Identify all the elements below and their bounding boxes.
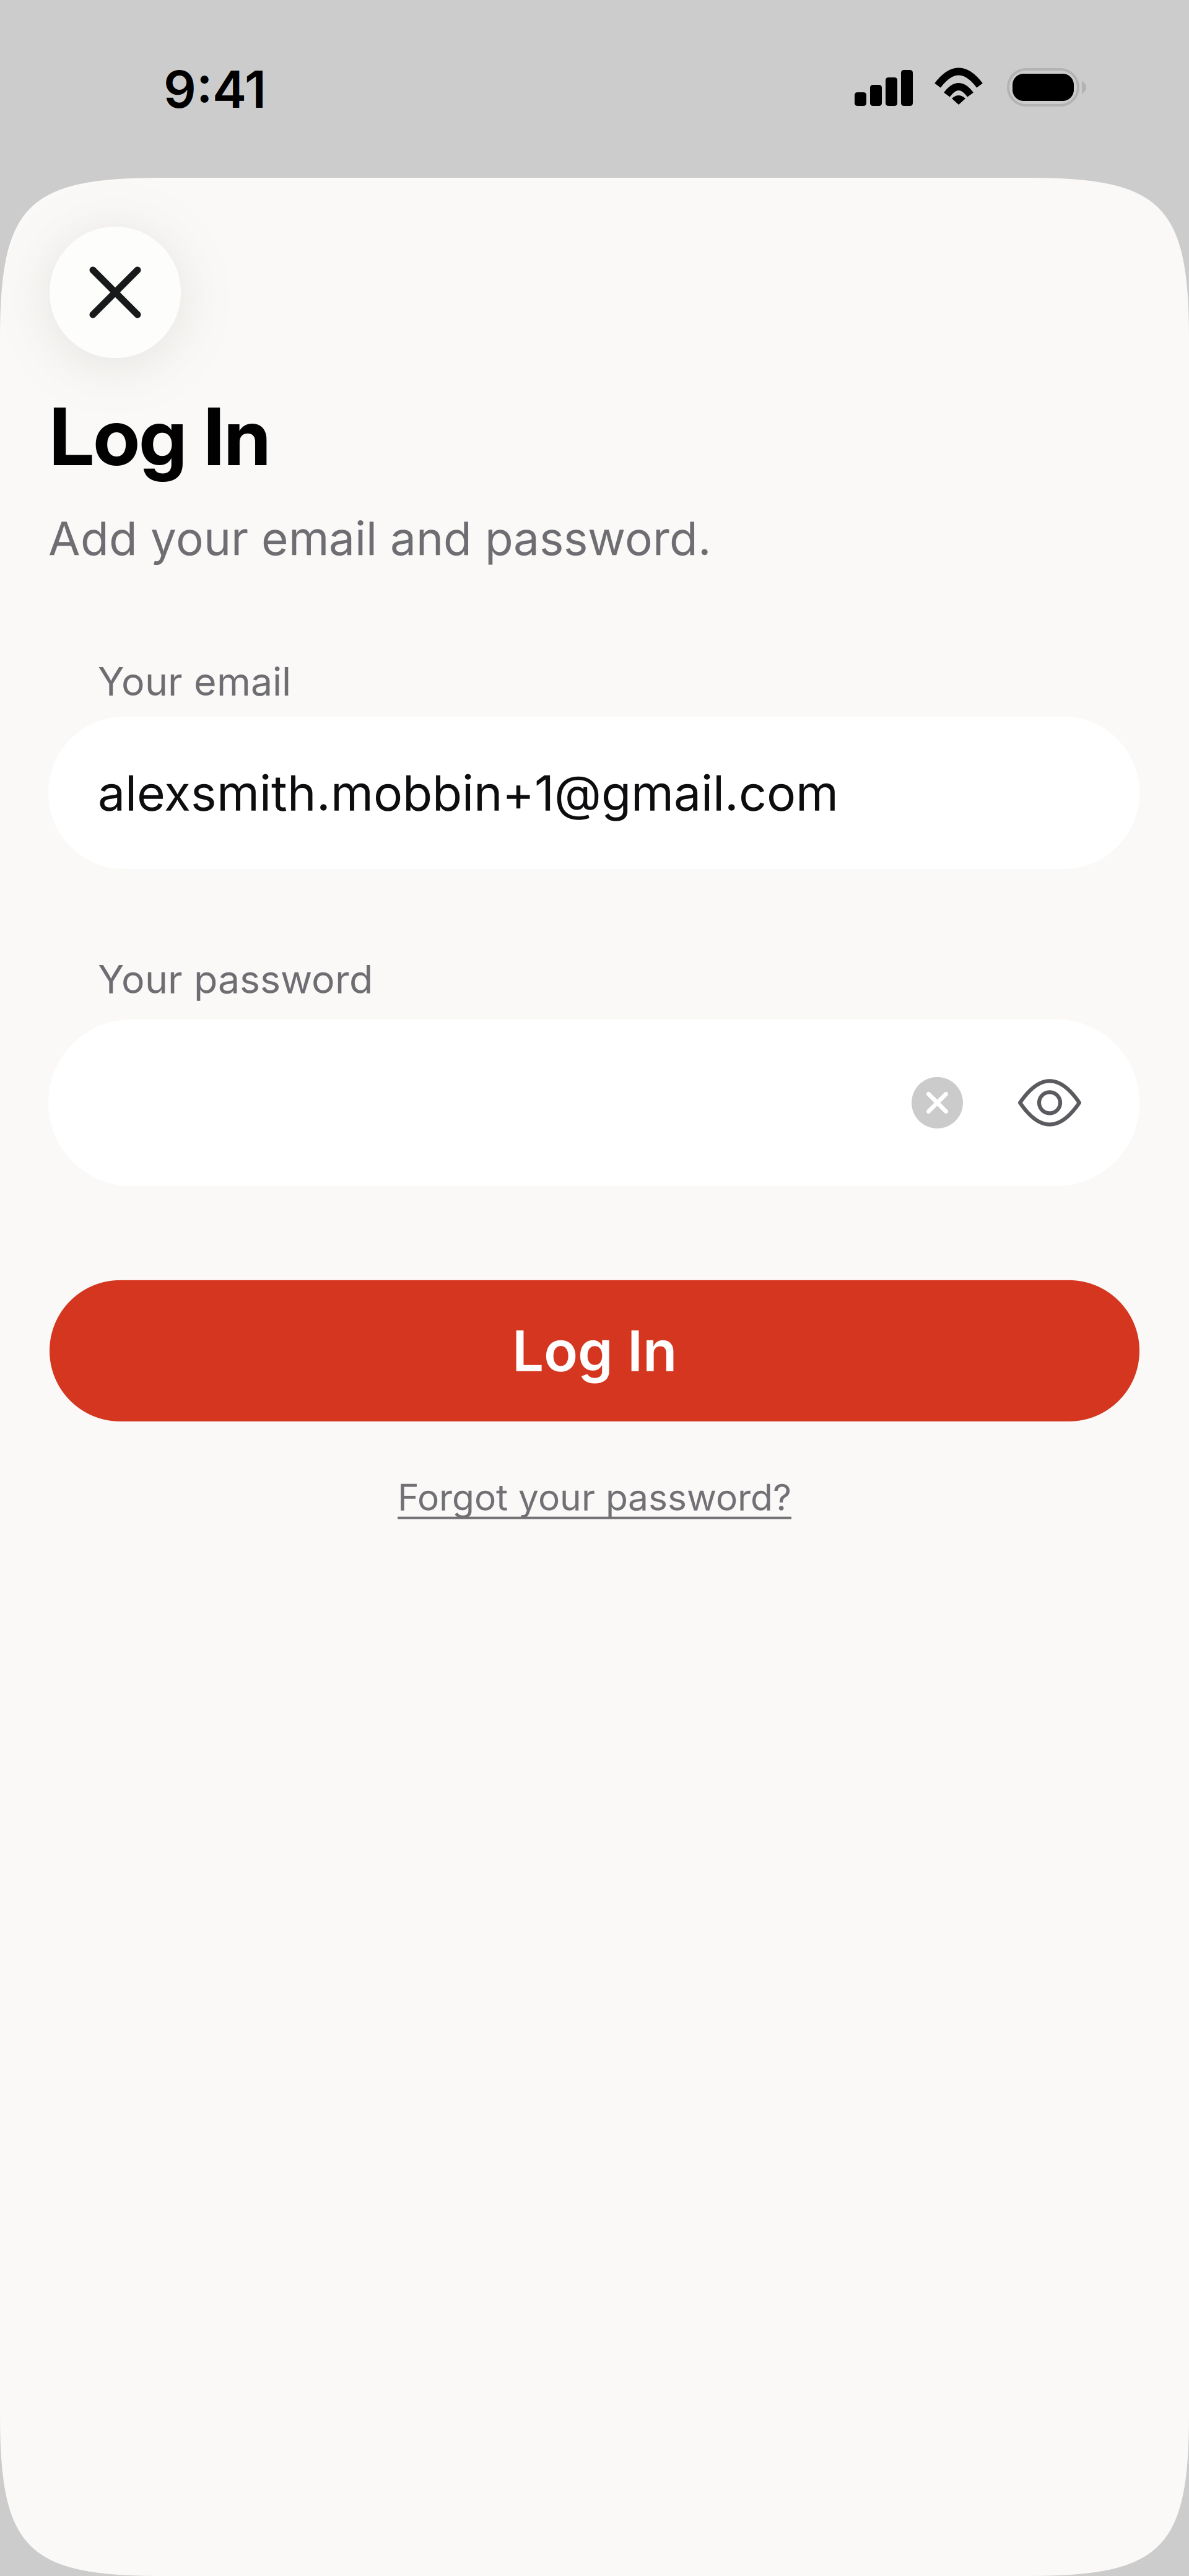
button[interactable]: Show password <box>1018 1079 1081 1127</box>
staticText: Log In <box>512 1317 677 1385</box>
staticText: Your email <box>98 658 291 705</box>
staticText: Add your email and password. <box>48 510 712 566</box>
staticText: alexsmith.mobbin+1@gmail.com <box>98 763 838 822</box>
staticText: 9:41 <box>163 58 266 120</box>
button[interactable]: Forgot your password? <box>0 1475 1189 1519</box>
staticText: Log In <box>50 388 271 484</box>
staticText: Forgot your password? <box>398 1475 791 1519</box>
button[interactable]: Log In <box>50 1280 1139 1421</box>
button[interactable]: Clear password <box>912 1077 963 1128</box>
staticText: Your password <box>98 956 373 1003</box>
button[interactable]: Close <box>50 227 181 358</box>
